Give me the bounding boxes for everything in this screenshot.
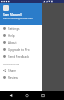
staticText: Share <box>8 69 17 73</box>
button[interactable]: Recent apps <box>39 91 47 100</box>
button[interactable]: Help <box>0 32 42 39</box>
button[interactable]: Review <box>0 74 42 81</box>
staticText: Sam Maxwell <box>3 13 22 17</box>
staticText: Upgrade to Pro <box>8 48 30 52</box>
button[interactable]: Back <box>7 91 15 100</box>
button[interactable]: Send Feedback <box>0 53 42 60</box>
staticText: Settings <box>8 27 20 31</box>
button[interactable]: Upgrade to Pro <box>0 46 42 53</box>
staticText: COMMUNICATE <box>3 63 20 66</box>
staticText: Help <box>8 34 15 38</box>
button[interactable]: About <box>0 39 42 46</box>
staticText: About <box>8 41 17 45</box>
staticText: sam.maxwell@gmail.com <box>3 16 33 19</box>
button[interactable]: Share <box>0 67 42 74</box>
staticText: Review <box>8 76 18 80</box>
button[interactable]: Settings <box>0 25 42 32</box>
button[interactable]: Home <box>23 91 31 100</box>
staticText: Send Feedback <box>8 55 30 59</box>
